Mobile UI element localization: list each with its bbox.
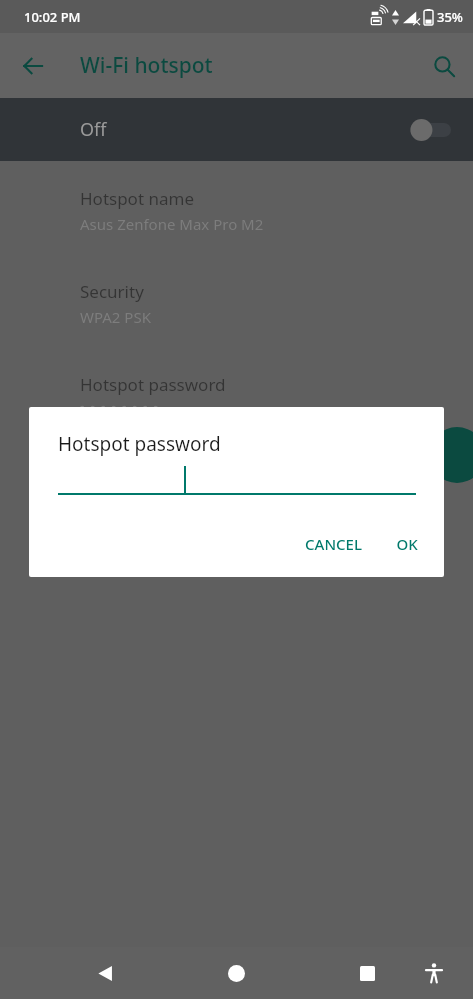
button[interactable]: CANCEL [293, 525, 374, 563]
button[interactable]: Search [420, 42, 468, 90]
button[interactable]: Back [81, 949, 129, 997]
button[interactable]: Hotspot password [0, 361, 473, 411]
staticText: 10:02 PM [24, 8, 81, 26]
staticText: Hotspot password [80, 373, 226, 396]
button[interactable]: Hotspot name [0, 175, 473, 268]
staticText: Off [80, 117, 107, 142]
button[interactable]: Back [9, 42, 57, 90]
staticText: Hotspot password [58, 431, 221, 457]
button[interactable]: Home [212, 949, 260, 997]
staticText: OK [396, 534, 418, 554]
button[interactable]: Edit [429, 427, 473, 483]
staticText: Security [80, 280, 144, 303]
staticText: Wi-Fi hotspot [80, 51, 213, 80]
staticText: Hotspot name [80, 187, 194, 210]
staticText: 35% [437, 8, 463, 26]
button[interactable]: Off [0, 98, 473, 161]
button[interactable]: Accessibility [410, 949, 458, 997]
staticText: Asus Zenfone Max Pro M2 [80, 214, 264, 234]
button[interactable]: OK [384, 525, 430, 563]
button[interactable]: Recent apps [343, 949, 391, 997]
button[interactable]: Security [0, 268, 473, 361]
staticText: CANCEL [305, 534, 362, 554]
staticText: WPA2 PSK [80, 307, 151, 327]
